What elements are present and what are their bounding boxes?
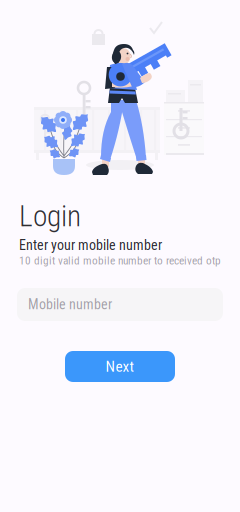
staticText: Next: [105, 357, 134, 375]
staticText: Mobile number: [28, 296, 112, 313]
staticText: Login: [19, 199, 81, 233]
staticText: 10 digit valid mobile number to received…: [19, 254, 221, 267]
button[interactable]: Mobile number: [17, 288, 223, 321]
staticText: Enter your mobile number: [19, 237, 162, 253]
button[interactable]: Next: [65, 351, 175, 382]
